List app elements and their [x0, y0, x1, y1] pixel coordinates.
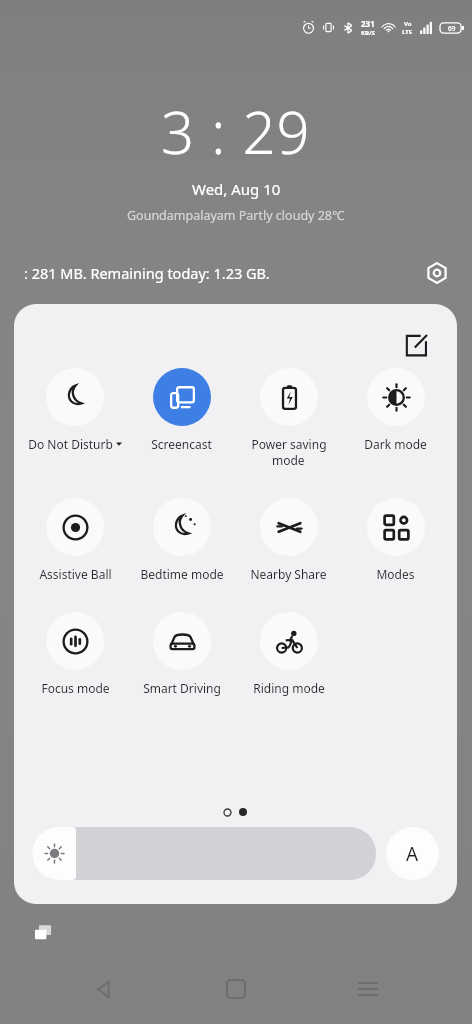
staticText: Nearby Share [250, 566, 327, 582]
staticText: Vo [404, 20, 412, 28]
staticText: Smart Driving [143, 680, 221, 696]
staticText: Screencast [151, 436, 212, 452]
button[interactable]: Focus mode [22, 610, 128, 698]
staticText: 231 [361, 18, 375, 29]
button[interactable]: Riding mode [235, 610, 342, 698]
staticText: Bedtime mode [140, 566, 224, 582]
staticText: LTE [402, 28, 413, 36]
staticText: Do Not Disturb [28, 436, 113, 452]
staticText: mode [272, 452, 305, 468]
staticText: Goundampalayam Partly cloudy 28℃ [127, 207, 345, 224]
button[interactable]: Modes [342, 496, 449, 584]
staticText: 3 : 29 [161, 92, 311, 171]
staticText: : 281 MB. Remaining today: 1.23 GB. [24, 263, 270, 283]
button[interactable]: Dark mode [342, 366, 449, 454]
staticText: 69 [448, 24, 456, 33]
button[interactable]: A [386, 827, 439, 880]
button[interactable]: Screencast [128, 366, 235, 454]
staticText: Riding mode [253, 680, 325, 696]
staticText: Focus mode [41, 680, 110, 696]
button[interactable]: Power saving [235, 366, 342, 470]
button[interactable]: Bedtime mode [128, 496, 235, 584]
button[interactable]: Edit [399, 328, 433, 362]
button[interactable]: Menu [340, 961, 396, 1017]
button[interactable]: Smart Driving [128, 610, 235, 698]
button[interactable]: Recents [26, 916, 60, 950]
button[interactable]: Nearby Share [235, 496, 342, 584]
button[interactable]: Home [208, 961, 264, 1017]
button[interactable]: Do Not Disturb [22, 366, 128, 454]
button[interactable]: Settings [420, 256, 454, 290]
staticText: Modes [376, 566, 415, 582]
staticText: Power saving [251, 436, 327, 452]
staticText: Dark mode [364, 436, 427, 452]
button[interactable]: Assistive Ball [22, 496, 128, 584]
staticText: Wed, Aug 10 [192, 179, 281, 199]
button[interactable]: Brightness [32, 827, 376, 880]
staticText: A [406, 841, 419, 867]
staticText: Assistive Ball [39, 566, 112, 582]
staticText: KB/S [361, 29, 375, 37]
